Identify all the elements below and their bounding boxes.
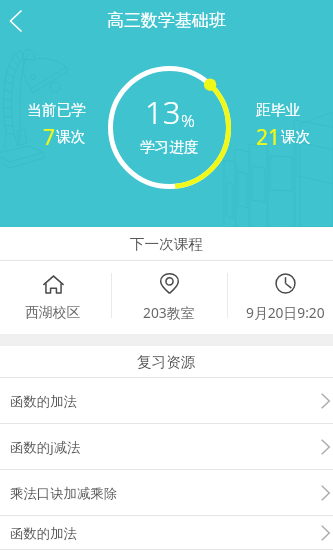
staticText: 21 <box>256 123 281 152</box>
staticText: 13 <box>145 91 181 133</box>
staticText: 函数的加法 <box>10 393 321 410</box>
staticText: 函数的加法 <box>10 525 321 542</box>
button[interactable]: 9月20日9:20 <box>228 261 333 334</box>
staticText: 距毕业 <box>256 101 301 120</box>
staticText: 学习进度 <box>140 138 199 156</box>
staticText: 高三数学基础班 <box>107 10 226 31</box>
staticText: 下一次课程 <box>130 235 203 253</box>
staticText: % <box>181 109 195 132</box>
button[interactable]: 函数的加法 <box>0 378 333 424</box>
button[interactable]: 函数的j减法 <box>0 424 333 470</box>
staticText: 当前已学 <box>27 101 86 120</box>
staticText: 课次 <box>281 128 311 147</box>
button[interactable]: 西湖校区 <box>0 261 106 334</box>
staticText: 乘法口诀加减乘除 <box>10 485 321 502</box>
staticText: 课次 <box>56 128 86 147</box>
staticText: 7 <box>43 123 56 152</box>
button[interactable]: 203教室 <box>111 261 227 334</box>
staticText: 函数的j减法 <box>10 438 321 456</box>
button[interactable]: Back <box>0 0 32 41</box>
button[interactable]: 乘法口诀加减乘除 <box>0 470 333 516</box>
staticText: 9月20日9:20 <box>246 303 325 322</box>
staticText: 复习资源 <box>137 353 196 371</box>
staticText: 203教室 <box>143 303 195 322</box>
staticText: 西湖校区 <box>25 304 81 321</box>
button[interactable]: 函数的加法 <box>0 516 333 550</box>
